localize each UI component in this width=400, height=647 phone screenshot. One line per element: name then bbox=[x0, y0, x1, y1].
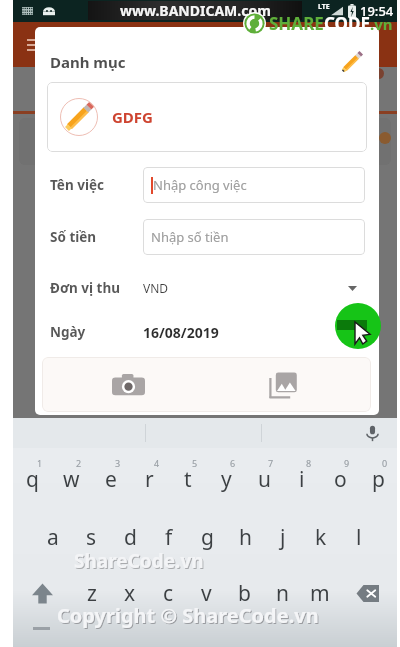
button[interactable]: h bbox=[226, 510, 264, 565]
button[interactable]: Edit category bbox=[335, 45, 369, 79]
staticText: Số tiền bbox=[50, 228, 97, 246]
staticText: 1 bbox=[37, 457, 43, 469]
staticText: y bbox=[221, 465, 232, 494]
button[interactable]: d bbox=[111, 510, 150, 565]
staticText: 19:54 bbox=[360, 2, 394, 20]
staticText: h bbox=[239, 523, 252, 552]
staticText: GDFG bbox=[112, 107, 153, 127]
button[interactable]: Nhập công việc bbox=[143, 167, 365, 203]
staticText: ShareCode.vn bbox=[75, 549, 205, 575]
staticText: c bbox=[163, 579, 174, 608]
button[interactable]: 4 bbox=[130, 452, 169, 507]
button[interactable]: 3 bbox=[91, 452, 130, 507]
staticText: 7 bbox=[268, 457, 274, 469]
staticText: CODE bbox=[324, 12, 370, 35]
staticText: 16/08/2019 bbox=[143, 323, 219, 342]
button[interactable]: Nhập số tiền bbox=[143, 219, 365, 255]
staticText: w bbox=[63, 465, 80, 494]
button[interactable]: 1 bbox=[13, 452, 52, 507]
staticText: LTE bbox=[318, 2, 330, 12]
staticText: p bbox=[372, 465, 385, 494]
staticText: q bbox=[26, 465, 39, 494]
button[interactable]: l bbox=[340, 510, 378, 565]
button[interactable]: Symbols bbox=[13, 622, 70, 647]
button[interactable]: c bbox=[149, 566, 187, 621]
staticText: b bbox=[238, 579, 251, 608]
staticText: l bbox=[356, 523, 362, 552]
staticText: VND bbox=[143, 280, 169, 296]
button[interactable]: Backspace bbox=[339, 566, 397, 621]
staticText: a bbox=[47, 523, 59, 552]
button[interactable]: z bbox=[72, 566, 111, 621]
staticText: Copyright © ShareCode.vn bbox=[58, 603, 320, 630]
staticText: Danh mục bbox=[50, 52, 126, 72]
staticText: v bbox=[201, 579, 212, 608]
staticText: 0 bbox=[382, 457, 388, 469]
button[interactable]: 9 bbox=[321, 452, 359, 507]
button[interactable]: v bbox=[187, 566, 225, 621]
button[interactable]: Choose image bbox=[264, 366, 302, 404]
staticText: j bbox=[280, 523, 286, 552]
button[interactable]: 0 bbox=[359, 452, 397, 507]
button[interactable]: g bbox=[188, 510, 226, 565]
staticText: 6 bbox=[230, 457, 236, 469]
button[interactable]: Select currency bbox=[343, 279, 361, 297]
staticText: t bbox=[184, 465, 192, 494]
staticText: d bbox=[124, 523, 137, 552]
staticText: 8 bbox=[306, 457, 312, 469]
button[interactable]: j bbox=[264, 510, 302, 565]
staticText: e bbox=[105, 465, 117, 494]
button[interactable]: Enter bbox=[339, 622, 397, 647]
button[interactable]: 8 bbox=[283, 452, 321, 507]
staticText: 5 bbox=[192, 457, 198, 469]
button[interactable]: Save bbox=[335, 303, 381, 349]
button[interactable]: s bbox=[72, 510, 111, 565]
button[interactable]: Shift bbox=[13, 566, 72, 621]
staticText: Nhập công việc bbox=[153, 176, 247, 194]
staticText: u bbox=[258, 465, 271, 494]
staticText: 2 bbox=[76, 457, 82, 469]
button[interactable]: x bbox=[111, 566, 149, 621]
button[interactable]: n bbox=[263, 566, 301, 621]
staticText: f bbox=[165, 523, 173, 552]
staticText: Copyright © ShareCode.vn bbox=[57, 602, 319, 629]
button[interactable]: 5 bbox=[169, 452, 207, 507]
staticText: n bbox=[276, 579, 289, 608]
staticText: k bbox=[315, 523, 327, 552]
button[interactable]: Take photo bbox=[109, 366, 147, 404]
staticText: s bbox=[86, 523, 97, 552]
staticText: m bbox=[310, 579, 330, 608]
button[interactable]: a bbox=[33, 510, 72, 565]
staticText: z bbox=[87, 579, 97, 608]
staticText: Tên việc bbox=[50, 176, 104, 194]
staticText: 3 bbox=[115, 457, 121, 469]
staticText: Đơn vị thu bbox=[50, 279, 121, 297]
button[interactable]: 2 bbox=[52, 452, 91, 507]
staticText: ShareCode.vn bbox=[74, 548, 204, 574]
staticText: x bbox=[124, 579, 136, 608]
button[interactable]: f bbox=[150, 510, 188, 565]
staticText: Nhập số tiền bbox=[151, 228, 229, 246]
staticText: Ngày bbox=[50, 323, 86, 341]
staticText: o bbox=[334, 465, 347, 494]
button[interactable]: m bbox=[301, 566, 339, 621]
staticText: i bbox=[299, 465, 305, 494]
button[interactable]: 7 bbox=[245, 452, 283, 507]
button[interactable]: GDFG bbox=[47, 82, 367, 152]
button[interactable]: Voice input bbox=[364, 425, 381, 442]
staticText: www.BANDICAM.com bbox=[120, 1, 271, 20]
staticText: r bbox=[145, 465, 154, 494]
button[interactable]: b bbox=[225, 566, 263, 621]
staticText: 4 bbox=[154, 457, 160, 469]
staticText: g bbox=[201, 523, 214, 552]
button[interactable]: 6 bbox=[207, 452, 245, 507]
button[interactable]: k bbox=[302, 510, 340, 565]
staticText: 9 bbox=[344, 457, 350, 469]
staticText: SHARE bbox=[269, 12, 324, 35]
staticText: .vn bbox=[370, 14, 393, 34]
